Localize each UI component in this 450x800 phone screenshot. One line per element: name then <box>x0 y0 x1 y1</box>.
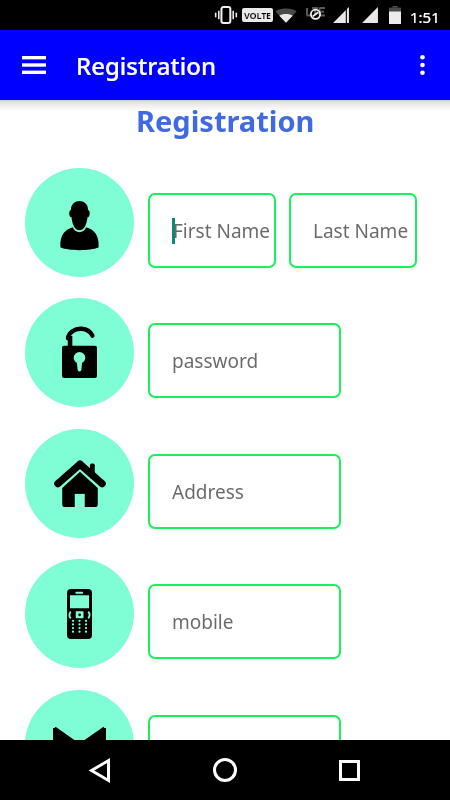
button[interactable]: Home <box>162 740 287 800</box>
staticText: 1:51 <box>410 7 440 27</box>
staticText: Registration <box>136 101 315 140</box>
button[interactable]: mobile <box>148 584 341 659</box>
staticText: email <box>172 740 221 766</box>
button[interactable]: password <box>148 323 341 398</box>
staticText: Address <box>172 479 244 505</box>
button[interactable]: Back <box>37 740 162 800</box>
button[interactable]: More options <box>395 30 450 100</box>
button[interactable]: email <box>148 715 341 790</box>
button[interactable]: Last Name <box>289 193 417 268</box>
staticText: First Name <box>173 218 271 244</box>
button[interactable]: Address <box>148 454 341 529</box>
button[interactable]: Open navigation drawer <box>0 30 70 100</box>
staticText: Last Name <box>313 218 409 244</box>
staticText: VOLTE <box>244 9 271 21</box>
staticText: mobile <box>172 609 234 635</box>
staticText: password <box>172 348 259 374</box>
button[interactable]: Recent apps <box>287 740 412 800</box>
staticText: Registration <box>76 49 216 82</box>
button[interactable]: First Name <box>148 193 276 268</box>
